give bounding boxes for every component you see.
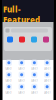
staticText: Label: [44, 67, 51, 70]
staticText: Label: [31, 79, 38, 82]
staticText: Full-Featured: [3, 4, 40, 25]
staticText: Label: [18, 91, 25, 94]
staticText: Label: [5, 67, 12, 70]
staticText: Label: [18, 67, 25, 70]
staticText: Label: [31, 91, 38, 94]
staticText: Downloader: [3, 25, 53, 36]
staticText: Label: [5, 79, 12, 82]
staticText: Label: [44, 91, 51, 94]
staticText: Label: [31, 67, 38, 70]
staticText: Label: [44, 79, 51, 82]
staticText: Label: [18, 79, 25, 82]
staticText: Label: [5, 91, 12, 94]
